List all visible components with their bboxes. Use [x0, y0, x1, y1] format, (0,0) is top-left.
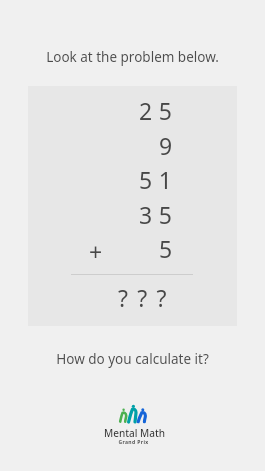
staticText: 25 [139, 95, 179, 126]
staticText: How do you calculate it? [0, 350, 265, 368]
staticText: ? ? ? [118, 282, 169, 313]
staticText: Look at the problem below. [0, 48, 265, 66]
staticText: 5 [159, 233, 179, 264]
staticText: Grand Prix [1, 439, 265, 446]
staticText: + [89, 236, 103, 267]
staticText: 51 [139, 164, 179, 195]
staticText: 9 [159, 130, 179, 161]
staticText: 35 [139, 199, 179, 230]
staticText: Mental Math [2, 426, 265, 440]
